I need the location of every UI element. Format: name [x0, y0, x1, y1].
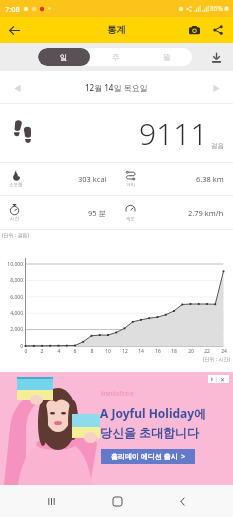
staticText: 2,000	[0, 326, 23, 333]
staticText: 거리	[126, 182, 135, 188]
staticText: 월	[163, 53, 171, 62]
button[interactable]: 홀리데이 에디션 출시 >	[101, 449, 195, 464]
button[interactable]: Share	[206, 18, 230, 42]
button[interactable]: Close ad	[208, 375, 229, 383]
staticText: A Joyful Holiday에	[100, 405, 207, 421]
staticText: 일	[60, 53, 68, 62]
button[interactable]: Home	[102, 486, 132, 516]
staticText: 303 kcal	[78, 174, 107, 184]
button[interactable]: 9111	[0, 104, 233, 163]
button[interactable]: innisfree	[0, 372, 233, 485]
button[interactable]: 시간	[0, 196, 116, 229]
staticText: 12월 14일 목요일	[85, 82, 148, 93]
staticText: 16	[151, 348, 165, 355]
staticText: 24	[217, 348, 231, 355]
staticText: 4	[52, 348, 66, 355]
button[interactable]: Back	[167, 486, 197, 516]
staticText: 2	[35, 348, 49, 355]
button[interactable]: Recents	[36, 486, 66, 516]
staticText: 0	[19, 348, 33, 355]
staticText: 7:08	[5, 4, 20, 14]
button[interactable]: 속도	[116, 196, 233, 229]
staticText: 홀리데이 에디션 출시 >	[111, 452, 186, 462]
staticText: 10	[101, 348, 115, 355]
staticText: innisfree	[101, 388, 135, 398]
button[interactable]: Camera	[182, 18, 206, 42]
staticText: (단위 : 걸음)	[2, 232, 29, 239]
staticText: 0	[0, 343, 23, 350]
staticText: 8,000	[0, 277, 23, 284]
staticText: 당신을 초대합니다	[100, 424, 200, 440]
button[interactable]: 주	[90, 48, 141, 66]
staticText: 86%	[210, 4, 223, 13]
staticText: 주	[112, 53, 120, 62]
staticText: 22	[200, 348, 214, 355]
staticText: 6	[68, 348, 82, 355]
button[interactable]: Next day	[205, 77, 227, 99]
staticText: 9111	[139, 113, 208, 154]
staticText: 6,000	[0, 294, 23, 301]
staticText: 95 분	[88, 208, 107, 218]
staticText: 14	[134, 348, 148, 355]
staticText: 2.79 km/h	[188, 208, 224, 218]
button[interactable]: 거리	[116, 163, 233, 195]
staticText: 6.38 km	[196, 174, 224, 184]
staticText: 8	[85, 348, 99, 355]
staticText: |	[213, 375, 220, 383]
staticText: 20	[184, 348, 198, 355]
staticText: 18	[167, 348, 181, 355]
staticText: 10,000	[0, 261, 23, 268]
button[interactable]: Previous day	[6, 77, 28, 99]
staticText: 걸음	[211, 142, 224, 150]
staticText: 시간	[10, 216, 19, 222]
staticText: i	[211, 375, 213, 383]
staticText: 소모량	[9, 182, 23, 188]
staticText: 통계	[107, 24, 126, 36]
staticText: (단위 : 시간)	[203, 356, 230, 363]
button[interactable]: 일	[38, 48, 90, 66]
staticText: 4,000	[0, 310, 23, 317]
staticText: 속도	[126, 216, 135, 222]
button[interactable]: Back	[3, 19, 25, 41]
button[interactable]: Download	[206, 47, 226, 67]
staticText: 12	[118, 348, 132, 355]
button[interactable]: 소모량	[0, 163, 116, 195]
button[interactable]: 월	[141, 48, 192, 66]
staticText: ✕	[220, 376, 226, 383]
